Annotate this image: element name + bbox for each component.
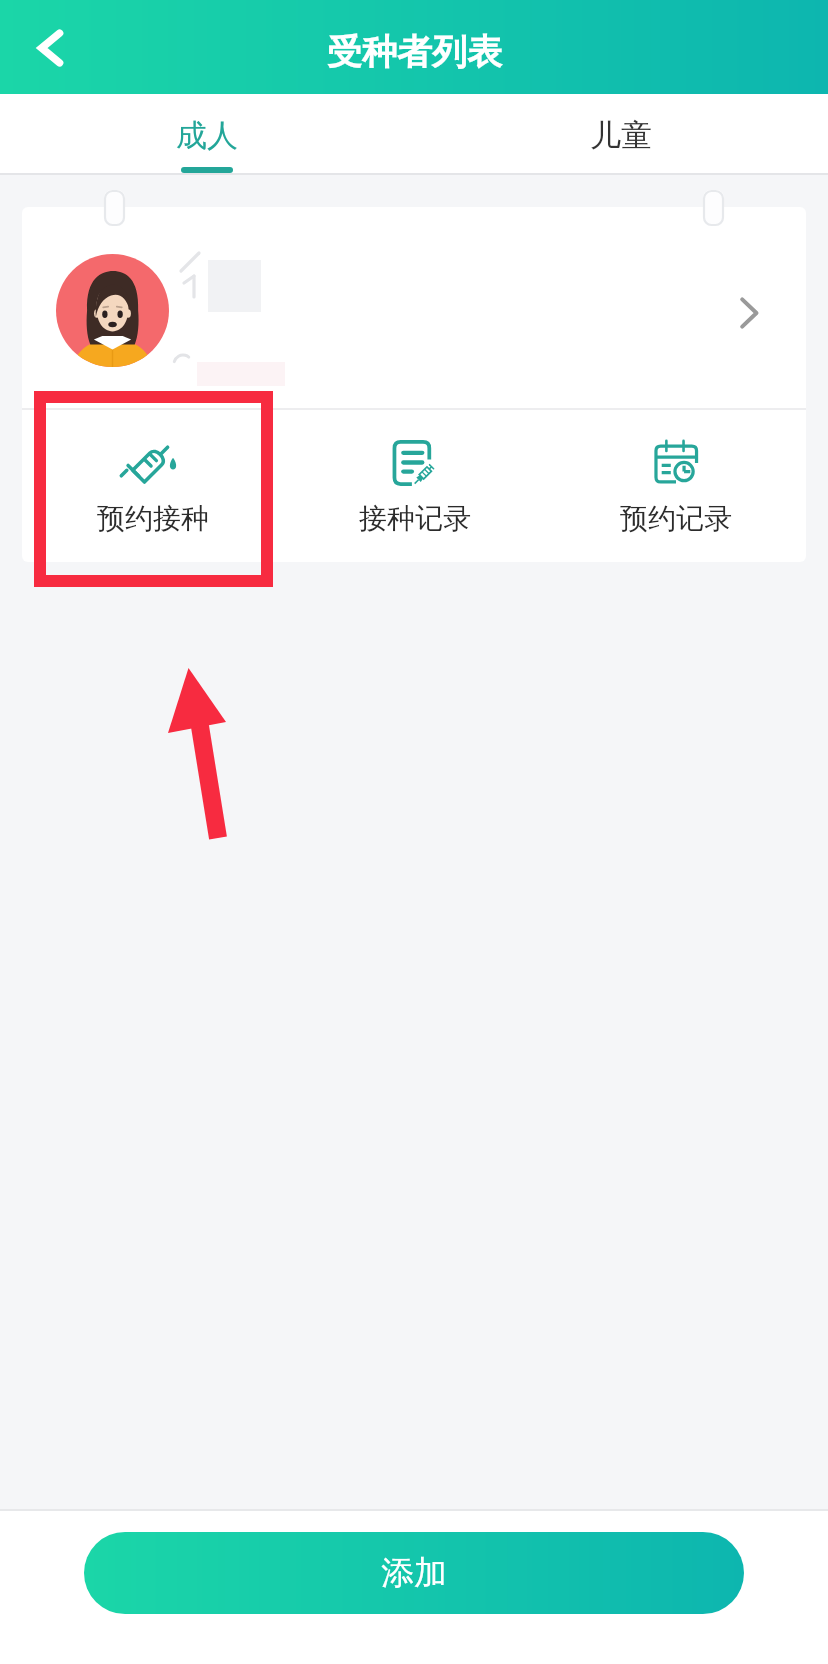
staticText: 成人 <box>176 116 238 155</box>
staticText: 添加 <box>381 1552 447 1594</box>
button[interactable]: 预约记录 <box>545 410 806 562</box>
button[interactable]: 儿童 <box>414 94 828 173</box>
button[interactable]: Back <box>12 10 88 86</box>
button[interactable]: 预约接种 <box>22 410 284 562</box>
staticText: 儿童 <box>590 116 652 155</box>
button[interactable]: 添加 <box>84 1532 744 1614</box>
staticText: 预约接种 <box>97 501 209 536</box>
button[interactable] <box>22 207 806 408</box>
staticText: 受种者列表 <box>327 30 502 74</box>
button[interactable]: 接种记录 <box>284 410 545 562</box>
staticText: 预约记录 <box>620 501 732 536</box>
button[interactable]: 成人 <box>0 94 414 173</box>
staticText: 接种记录 <box>359 501 471 536</box>
